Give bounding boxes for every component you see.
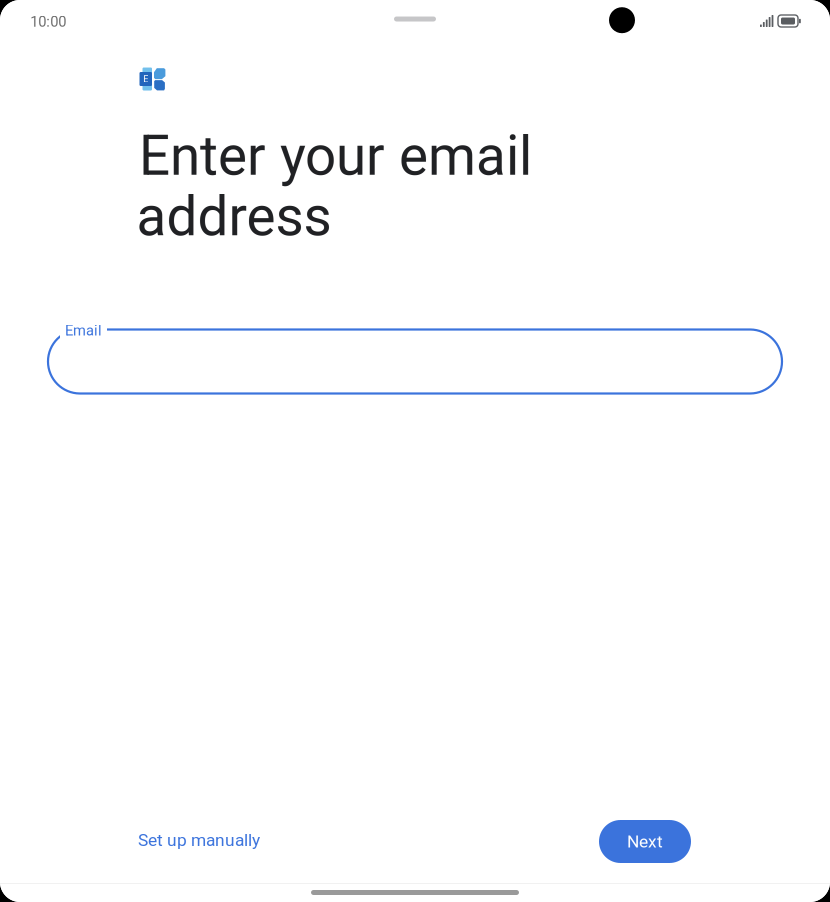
staticText: Next: [627, 831, 663, 852]
staticText: Set up manually: [138, 830, 260, 850]
button[interactable]: Email: [48, 319, 782, 392]
staticText: E: [143, 73, 148, 84]
staticText: 10:00: [30, 13, 66, 30]
staticText: Email: [65, 322, 102, 339]
button[interactable]: Set up manually: [126, 818, 272, 862]
button[interactable]: Next: [599, 820, 691, 863]
staticText: address: [136, 184, 331, 249]
staticText: Enter your email: [139, 124, 532, 188]
